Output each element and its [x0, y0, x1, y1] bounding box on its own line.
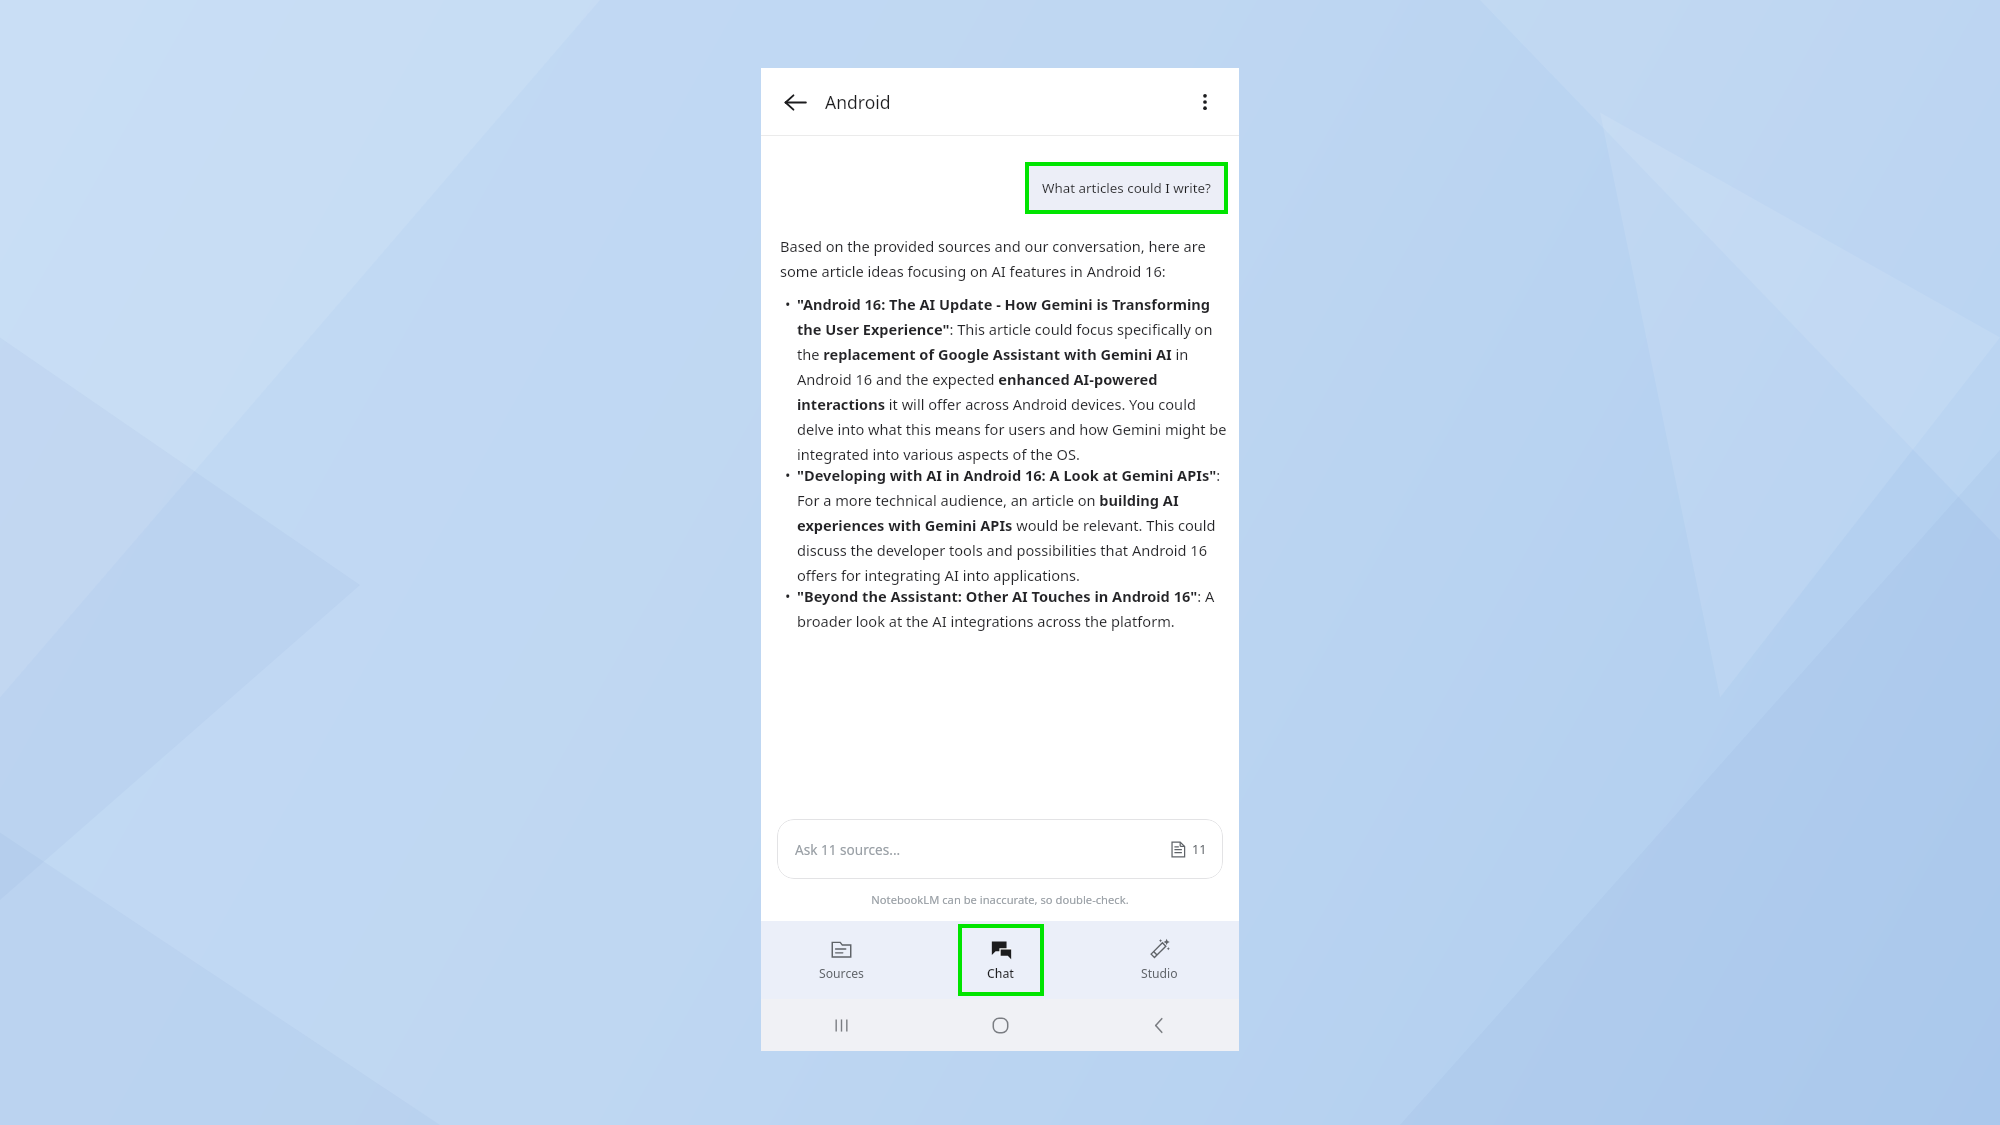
button[interactable]: Back: [775, 82, 815, 122]
button[interactable]: Sources: [761, 921, 921, 999]
staticText: NotebookLM can be inaccurate, so double-…: [761, 892, 1239, 907]
button[interactable]: Chat: [962, 928, 1040, 992]
button[interactable]: Back: [1080, 999, 1239, 1051]
button[interactable]: Home: [921, 999, 1080, 1051]
staticText: •: [785, 294, 791, 314]
staticText: "Beyond the Assistant: Other AI Touches …: [797, 586, 1228, 631]
button[interactable]: More options: [1185, 82, 1225, 122]
staticText: Android: [825, 90, 891, 114]
staticText: "Developing with AI in Android 16: A Loo…: [797, 465, 1228, 585]
staticText: Ask 11 sources...: [795, 840, 901, 859]
staticText: Based on the provided sources and our co…: [780, 236, 1228, 281]
staticText: What articles could I write?: [1042, 179, 1211, 197]
button[interactable]: Studio: [1080, 921, 1239, 999]
staticText: 11: [1192, 841, 1207, 858]
button[interactable]: Recents: [761, 999, 921, 1051]
staticText: Chat: [987, 965, 1015, 982]
staticText: •: [785, 586, 791, 606]
button[interactable]: Ask 11 sources...: [777, 819, 1223, 879]
button[interactable]: What articles could I write?: [1029, 166, 1224, 210]
staticText: Sources: [819, 965, 864, 982]
staticText: •: [785, 465, 791, 485]
staticText: "Android 16: The AI Update - How Gemini …: [797, 294, 1228, 464]
staticText: Studio: [1141, 965, 1178, 982]
